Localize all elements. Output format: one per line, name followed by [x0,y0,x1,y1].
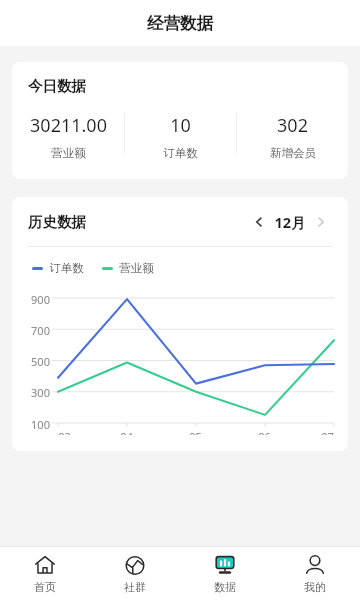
other: 数据 [214,554,236,576]
staticText: 100 [31,417,50,432]
staticText: 历史数据 [28,213,86,231]
other: 社群 [124,554,146,576]
staticText: 首页 [34,580,56,594]
button[interactable]: 数据 [180,554,270,594]
staticText: 数据 [214,580,236,594]
staticText: 10 [170,113,191,138]
button[interactable]: 社群 [90,554,180,594]
staticText: 营业额 [119,261,154,275]
other: 首页 [34,554,56,576]
staticText: 经营数据 [147,13,213,34]
button[interactable]: 上个月 [248,211,270,233]
staticText: 订单数 [49,261,84,275]
staticText: 我的 [304,580,326,594]
staticText: 新增会员 [270,146,316,160]
staticText: 900 [31,292,50,307]
staticText: 03 [58,429,71,435]
button[interactable]: 30211.00 [12,113,124,160]
staticText: 500 [31,354,50,369]
button[interactable]: 302 [237,113,348,160]
staticText: 05 [189,429,202,435]
button[interactable]: 我的 [270,554,360,594]
button[interactable]: 首页 [0,554,90,594]
staticText: 04 [120,429,133,435]
staticText: 12月 [274,212,306,232]
staticText: 300 [31,385,50,400]
staticText: 社群 [124,580,146,594]
staticText: 营业额 [51,146,86,160]
staticText: 302 [277,113,308,138]
staticText: 700 [31,323,50,338]
other: 我的 [304,554,326,576]
staticText: 订单数 [163,146,198,160]
staticText: 今日数据 [28,77,86,95]
button[interactable]: 10 [125,113,236,160]
staticText: 07 [321,429,334,435]
staticText: 30211.00 [30,113,107,138]
button[interactable]: 下个月 [310,211,332,233]
staticText: 06 [258,429,271,435]
